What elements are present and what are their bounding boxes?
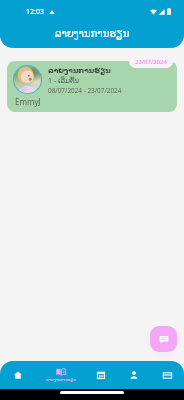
staticText: 23/07/2024	[135, 58, 167, 66]
staticText: ລາຍງານການຮຽນ	[48, 66, 111, 75]
staticText: ລາຍງານການຮຽນ	[55, 28, 130, 40]
staticText: 12:03	[26, 7, 44, 17]
staticText: 08/07/2024 - 23/07/2024	[48, 86, 122, 95]
button[interactable]: EmmyJ	[7, 61, 177, 112]
button[interactable]: Reports	[39, 361, 83, 389]
staticText: EmmyJ	[15, 96, 41, 107]
button[interactable]: New message	[150, 326, 177, 352]
button[interactable]: Payments	[155, 361, 179, 389]
button[interactable]: Calendar	[89, 361, 113, 389]
button[interactable]: Home	[6, 361, 30, 389]
button[interactable]: Profile	[122, 361, 146, 389]
staticText: 1 - ເລີ່ມຕົ້ນ	[48, 76, 80, 86]
staticText: ລາຍງານການຮຽນ	[46, 377, 76, 382]
